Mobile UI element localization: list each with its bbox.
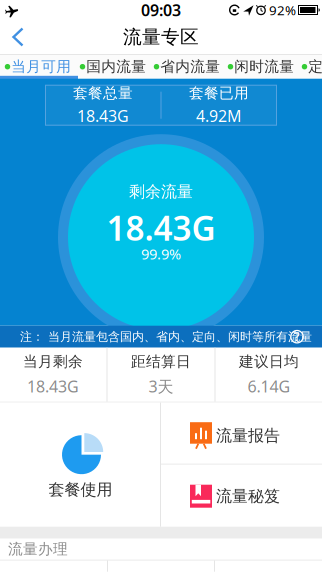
staticText: 4.92M bbox=[196, 105, 242, 126]
staticText: 6.14G bbox=[247, 376, 290, 397]
button[interactable]: 流量报告 bbox=[161, 403, 322, 464]
staticText: 当月剩余 bbox=[23, 353, 83, 371]
button[interactable]: 闲时流量 bbox=[224, 56, 298, 77]
staticText: 18.43G bbox=[77, 105, 129, 126]
button[interactable]: 当月可用 bbox=[0, 56, 76, 77]
button[interactable]: 套餐使用 bbox=[0, 403, 160, 527]
staticText: 09:03 bbox=[141, 0, 181, 21]
button[interactable] bbox=[0, 19, 24, 54]
staticText: 流量报告 bbox=[216, 426, 280, 446]
staticText: 注： 当月流量包含国内、省内、定向、闲时等所有流量 bbox=[20, 329, 312, 344]
staticText: 套餐使用 bbox=[48, 480, 112, 500]
button[interactable]: 定向流量 bbox=[298, 56, 322, 77]
staticText: 99.9% bbox=[141, 244, 181, 263]
staticText: 套餐总量 bbox=[73, 84, 133, 102]
staticText: 当月可用 bbox=[11, 58, 71, 76]
button[interactable]: 套餐已用 bbox=[161, 85, 277, 126]
staticText: 剩余流量 bbox=[129, 182, 193, 202]
button[interactable]: 国内流量 bbox=[76, 56, 150, 77]
staticText: 92% bbox=[269, 1, 296, 19]
button[interactable]: 省内流量 bbox=[150, 56, 224, 77]
staticText: 流量秘笈 bbox=[216, 486, 280, 506]
staticText: 距结算日 bbox=[131, 353, 191, 371]
staticText: 套餐已用 bbox=[189, 84, 249, 102]
staticText: 流量专区 bbox=[123, 25, 199, 48]
staticText: 定向流量 bbox=[308, 58, 322, 76]
button[interactable]: 流量秘笈 bbox=[161, 465, 322, 527]
staticText: 省内流量 bbox=[160, 58, 220, 76]
staticText: 3天 bbox=[148, 376, 173, 397]
staticText: 建议日均 bbox=[239, 353, 299, 371]
staticText: ? bbox=[294, 329, 300, 345]
staticText: 18.43G bbox=[27, 376, 79, 397]
staticText: 闲时流量 bbox=[234, 58, 294, 76]
button[interactable]: ? bbox=[290, 330, 304, 344]
staticText: 国内流量 bbox=[86, 58, 146, 76]
staticText: 流量办理 bbox=[8, 540, 68, 558]
button[interactable]: 套餐总量 bbox=[45, 85, 161, 126]
staticText: 18.43G bbox=[106, 206, 215, 250]
